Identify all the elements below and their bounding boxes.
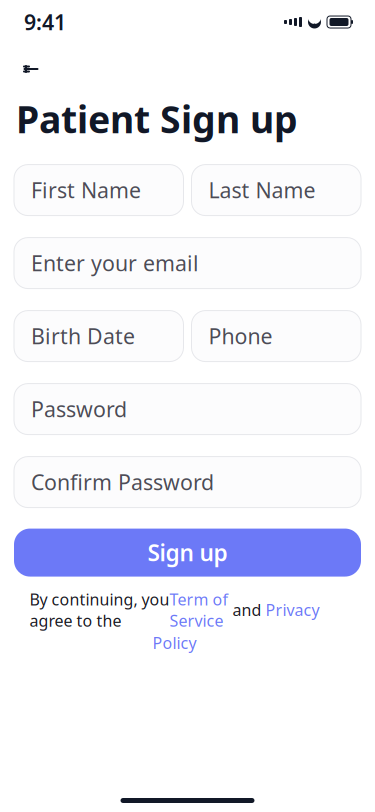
staticText: Last Name — [208, 176, 315, 204]
staticText: By continuing, you agree to the — [29, 589, 169, 631]
staticText: Password — [31, 395, 127, 423]
button[interactable]: Privacy — [265, 599, 319, 620]
staticText: Phone — [208, 322, 272, 350]
staticText: and — [228, 599, 265, 620]
staticText: Term of Service — [169, 589, 228, 631]
button[interactable]: Birth Date — [14, 311, 183, 362]
button[interactable]: Phone — [191, 311, 361, 362]
button[interactable]: Last Name — [191, 165, 361, 216]
staticText: Sign up — [147, 537, 227, 568]
button[interactable]: Term of Service — [169, 589, 228, 631]
staticText: Policy — [152, 632, 196, 653]
button[interactable]: Password — [14, 384, 361, 435]
staticText: 9:41 — [24, 8, 66, 36]
staticText: Birth Date — [31, 322, 135, 350]
staticText: Patient Sign up — [16, 94, 298, 144]
staticText: First Name — [31, 176, 141, 204]
button[interactable]: Sign up — [14, 529, 361, 577]
button[interactable]: Confirm Password — [14, 457, 361, 508]
staticText: Privacy — [265, 599, 319, 620]
staticText: Confirm Password — [31, 468, 214, 496]
button[interactable]: First Name — [14, 165, 183, 216]
button[interactable]: Policy — [152, 632, 196, 653]
button[interactable]: Back — [14, 54, 48, 84]
staticText: Enter your email — [31, 249, 199, 277]
button[interactable]: Enter your email — [14, 238, 361, 289]
